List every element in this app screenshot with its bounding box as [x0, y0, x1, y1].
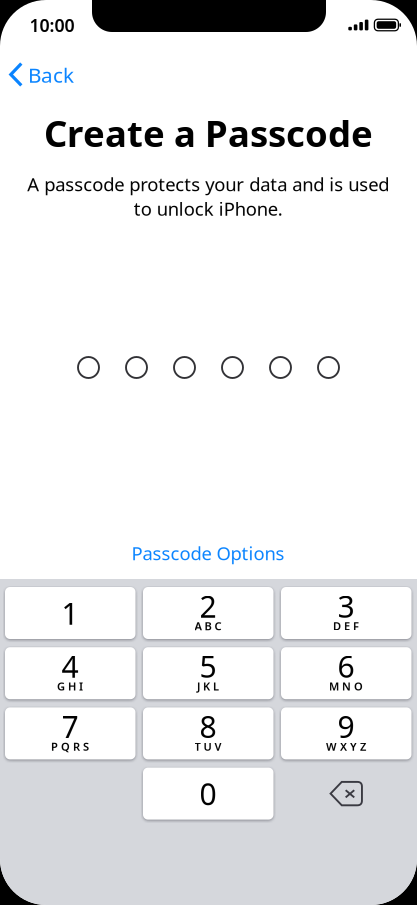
staticText: W X Y Z [326, 739, 366, 754]
button[interactable]: 7 [5, 707, 135, 759]
button[interactable]: 3 [281, 587, 411, 639]
button[interactable]: 4 [5, 647, 135, 699]
staticText: 0 [199, 774, 216, 813]
staticText: G H I [57, 679, 83, 694]
staticText: M N O [329, 679, 363, 694]
staticText: 7 [61, 706, 78, 746]
staticText: Create a Passcode [44, 109, 373, 157]
staticText: D E F [333, 619, 359, 633]
button[interactable]: Passcode Options [108, 539, 308, 567]
staticText: 5 [199, 646, 216, 686]
button[interactable]: 8 [143, 707, 273, 759]
staticText: 8 [199, 706, 216, 746]
button[interactable]: Back [0, 54, 86, 95]
staticText: 3 [337, 586, 354, 626]
button[interactable]: 9 [281, 707, 411, 759]
staticText: T U V [194, 739, 221, 754]
staticText: 10:00 [29, 13, 74, 37]
staticText: Back [28, 61, 74, 88]
staticText: A passcode protects your data and is use… [27, 172, 389, 221]
staticText: P Q R S [51, 739, 89, 754]
button[interactable]: 2 [143, 587, 273, 639]
button[interactable]: Delete [281, 768, 411, 820]
staticText: A B C [194, 619, 221, 633]
staticText: 9 [337, 706, 354, 746]
button[interactable]: 0 [143, 768, 273, 820]
staticText: 4 [61, 646, 78, 686]
staticText: Passcode Options [131, 541, 284, 565]
staticText: 6 [337, 646, 354, 686]
staticText: 1 [61, 593, 78, 633]
button[interactable]: 6 [281, 647, 411, 699]
staticText: J K L [197, 679, 219, 694]
button[interactable]: 5 [143, 647, 273, 699]
staticText: 2 [199, 586, 216, 626]
button[interactable]: 1 [5, 587, 135, 639]
